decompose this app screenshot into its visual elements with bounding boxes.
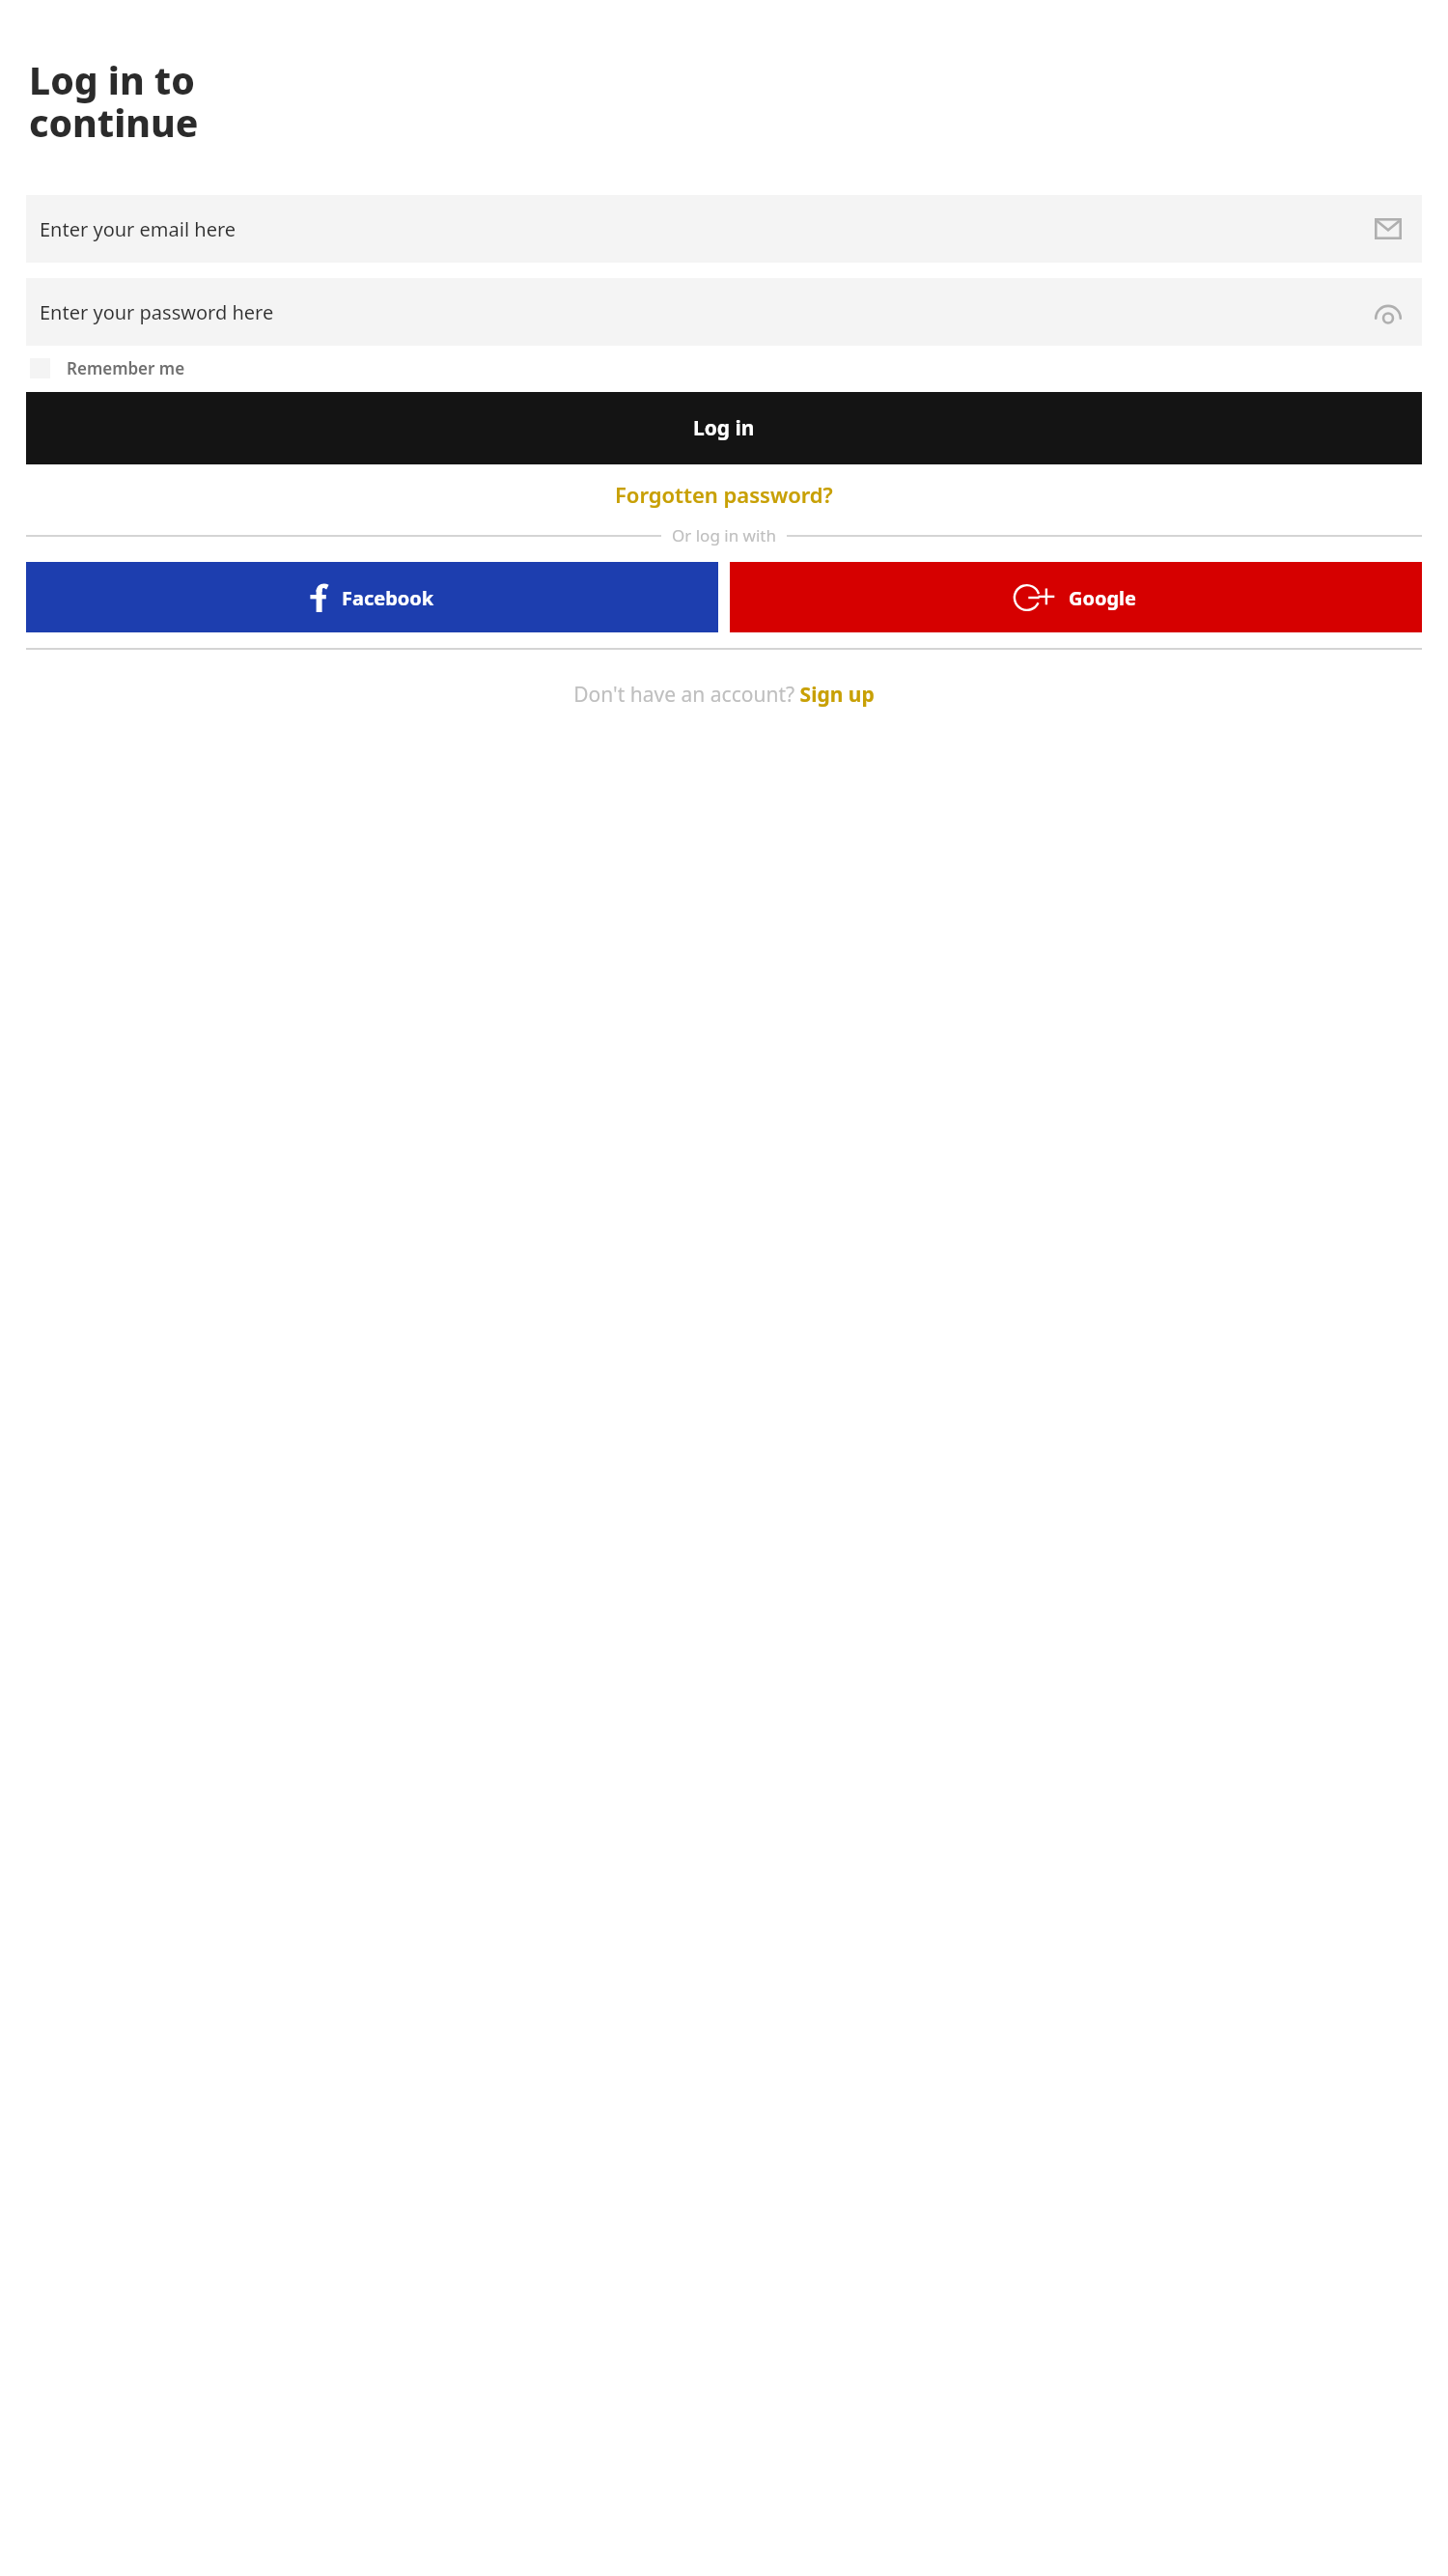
staticText: Enter your email here xyxy=(40,216,237,242)
button[interactable]: Enter your email here xyxy=(26,195,1422,263)
staticText: Remember me xyxy=(67,357,185,379)
button[interactable]: Don't have an account? Sign up xyxy=(26,681,1422,709)
staticText: Or log in with xyxy=(672,524,776,546)
staticText: Don't have an account? Sign up xyxy=(573,681,875,709)
button[interactable]: Facebook xyxy=(26,562,718,632)
button[interactable]: Show password xyxy=(1372,295,1405,328)
staticText: Forgotten password? xyxy=(615,480,833,509)
button[interactable]: Google xyxy=(730,562,1422,632)
button[interactable]: Email xyxy=(1372,212,1405,245)
staticText: Log in xyxy=(693,414,755,442)
button[interactable]: Enter your password here xyxy=(26,278,1422,346)
staticText: Google xyxy=(1069,585,1137,611)
staticText: Enter your password here xyxy=(40,299,274,325)
button[interactable]: Forgotten password? xyxy=(26,480,1422,509)
staticText: Facebook xyxy=(342,585,434,611)
staticText: Log in to continue xyxy=(29,54,199,149)
button[interactable]: Log in xyxy=(26,392,1422,464)
button[interactable]: Remember me xyxy=(26,357,1422,379)
